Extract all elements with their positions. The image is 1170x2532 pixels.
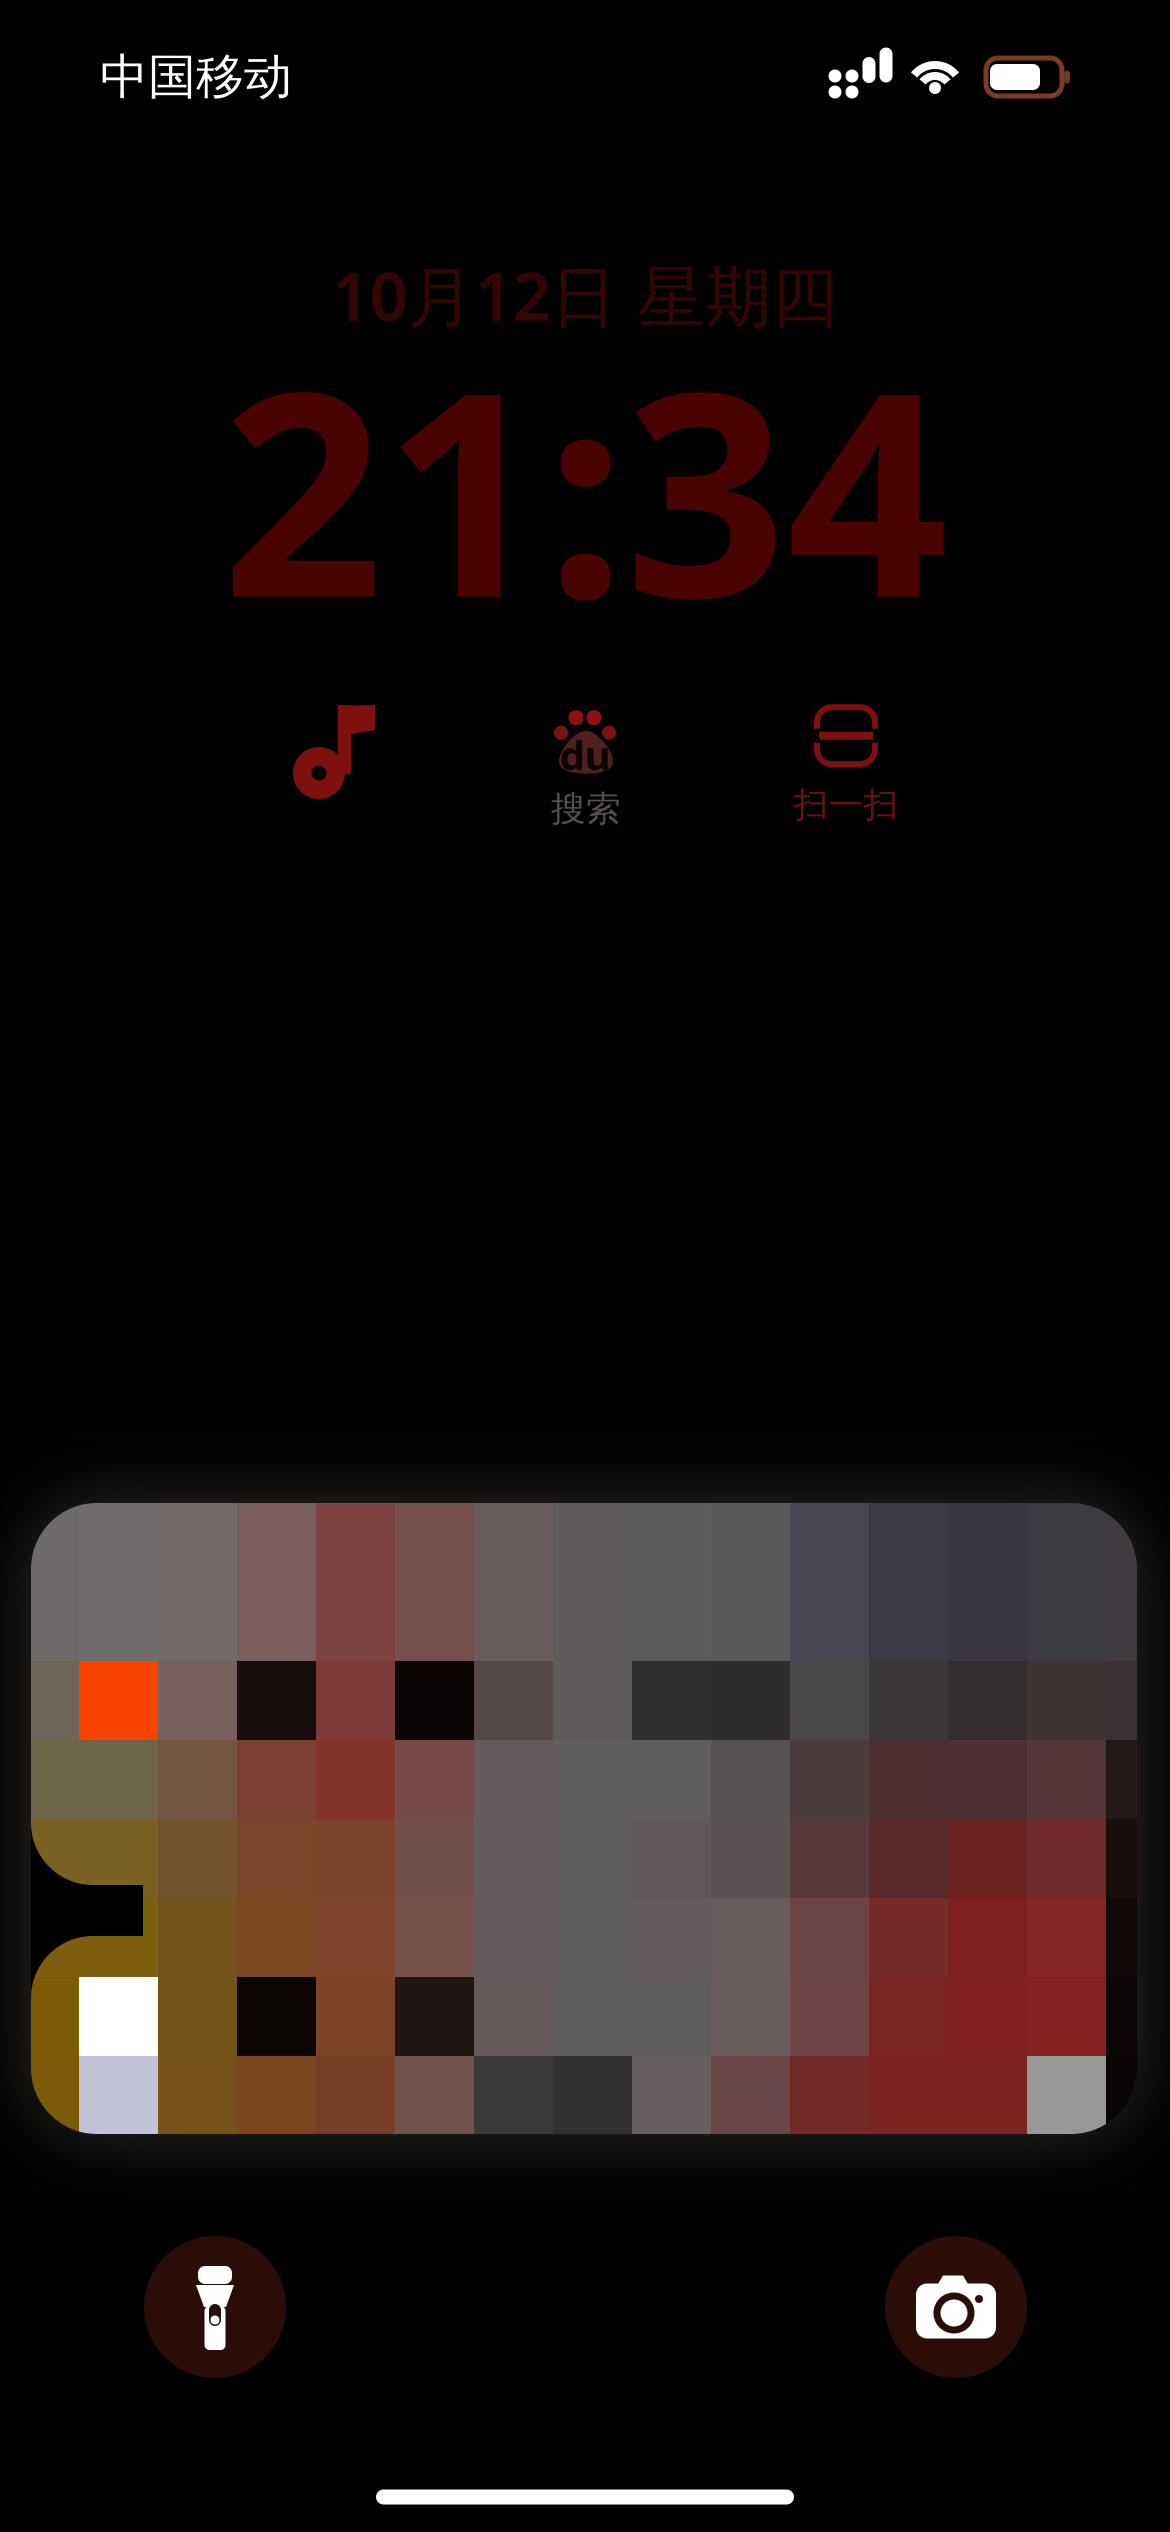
staticText: 扫一扫: [793, 784, 898, 826]
button[interactable]: du: [496, 685, 676, 845]
button[interactable]: Camera: [861, 2212, 1051, 2402]
button[interactable]: Music: [245, 672, 425, 832]
button[interactable]: 扫一扫: [756, 685, 936, 845]
staticText: 21:34: [221, 299, 948, 675]
button[interactable]: Notification: [31, 1503, 1137, 2134]
staticText: du: [559, 728, 610, 781]
staticText: 10月12日 星期四: [331, 251, 838, 339]
staticText: 中国移动: [100, 47, 292, 106]
button[interactable]: Flashlight: [120, 2212, 310, 2402]
staticText: 搜索: [551, 788, 621, 830]
